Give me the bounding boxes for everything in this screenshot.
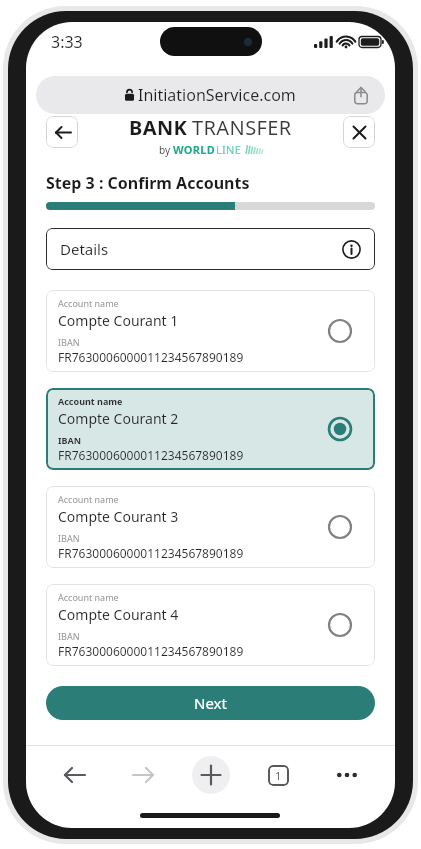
staticText: by (159, 143, 173, 157)
staticText: Compte Courant 4 (58, 605, 179, 624)
staticText: Account name (58, 493, 119, 505)
button[interactable]: Account name (46, 290, 375, 372)
staticText: BANK (129, 114, 188, 141)
staticText: 3:33 (51, 31, 83, 53)
staticText: FR7630006000011234567890189 (58, 545, 244, 561)
staticText: FR7630006000011234567890189 (58, 447, 244, 463)
button[interactable]: Close (343, 116, 375, 148)
staticText: TRANSFER (192, 114, 292, 141)
button[interactable]: Account name (46, 584, 375, 666)
staticText: IBAN (58, 630, 80, 642)
staticText: WORLD (173, 142, 216, 157)
staticText: InitiationService.com (138, 84, 296, 106)
button[interactable]: Account name (46, 388, 375, 470)
staticText: IBAN (58, 532, 80, 544)
staticText: Compte Courant 3 (58, 507, 179, 526)
staticText: Next (194, 693, 227, 713)
button[interactable]: Back (46, 116, 78, 148)
staticText: Compte Courant 2 (58, 409, 179, 428)
button[interactable]: More (327, 755, 367, 795)
staticText: Account name (58, 297, 119, 309)
button[interactable]: New tab (192, 756, 230, 794)
staticText: FR7630006000011234567890189 (58, 349, 244, 365)
staticText: Compte Courant 1 (58, 311, 179, 330)
staticText: FR7630006000011234567890189 (58, 643, 244, 659)
button[interactable]: Next (46, 686, 375, 720)
button[interactable]: Details (46, 228, 375, 270)
staticText: IBAN (58, 434, 82, 446)
button[interactable]: InitiationService.com (36, 76, 385, 114)
staticText: LINE (216, 142, 242, 157)
button[interactable]: Forward (123, 755, 163, 795)
staticText: Account name (58, 591, 119, 603)
staticText: Step 3 : Confirm Accounts (46, 172, 250, 194)
button[interactable]: Account name (46, 486, 375, 568)
staticText: IBAN (58, 336, 80, 348)
staticText: Account name (58, 395, 123, 407)
button[interactable]: Tabs (258, 755, 298, 795)
staticText: 1 (275, 768, 282, 783)
button[interactable]: Back (55, 755, 95, 795)
button[interactable]: Share (349, 83, 373, 107)
staticText: Details (60, 239, 109, 259)
